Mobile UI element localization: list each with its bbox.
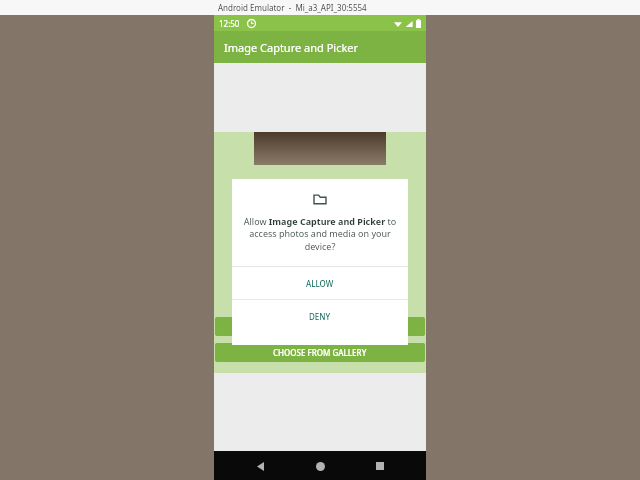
button[interactable]: Back — [248, 453, 274, 479]
button[interactable]: CHOOSE FROM GALLERY — [215, 343, 425, 362]
staticText: Allow Image Capture and Picker to access… — [241, 215, 399, 253]
button[interactable]: CAPTURE — [215, 317, 425, 336]
button[interactable]: DENY — [232, 300, 408, 332]
staticText: DENY — [309, 311, 331, 322]
staticText: Android Emulator - Mi_a3_API_30:5554 — [218, 2, 367, 13]
staticText: ALLOW — [306, 278, 334, 289]
button[interactable]: Home — [307, 453, 333, 479]
staticText: CHOOSE FROM GALLERY — [273, 347, 367, 358]
button[interactable]: ALLOW — [232, 267, 408, 299]
staticText: Image Capture and Picker — [224, 40, 359, 55]
staticText: 12:50 — [219, 18, 240, 29]
button[interactable]: Recents — [367, 453, 393, 479]
